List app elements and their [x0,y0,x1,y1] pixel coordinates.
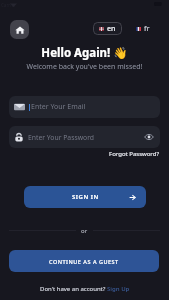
button[interactable]: Enter Your Password [9,126,160,148]
button[interactable]: fr [130,22,156,35]
button[interactable]: Sign Up [107,285,130,293]
staticText: Hello Again! 👋 [0,45,169,61]
button[interactable]: Enter Your Email [9,96,160,118]
staticText: CONTINUE AS A GUEST [49,258,119,265]
button[interactable]: Show password [143,131,155,143]
staticText: SIGN IN [72,193,99,201]
staticText: Welcome back you've been missed! [0,62,169,72]
button[interactable]: CONTINUE AS A GUEST [9,250,159,272]
button[interactable]: Forgot Password? [0,150,159,158]
staticText: or [81,227,88,235]
staticText: en [107,24,116,34]
staticText: Don't have an account? [40,285,107,293]
staticText: Enter Your Password [28,133,94,142]
button[interactable]: en [93,22,122,35]
staticText: Carrier [1,2,16,8]
staticText: fr [144,24,150,34]
staticText: Enter Your Email [31,102,86,112]
button[interactable]: SIGN IN [24,186,146,208]
button[interactable]: Home [10,20,29,39]
